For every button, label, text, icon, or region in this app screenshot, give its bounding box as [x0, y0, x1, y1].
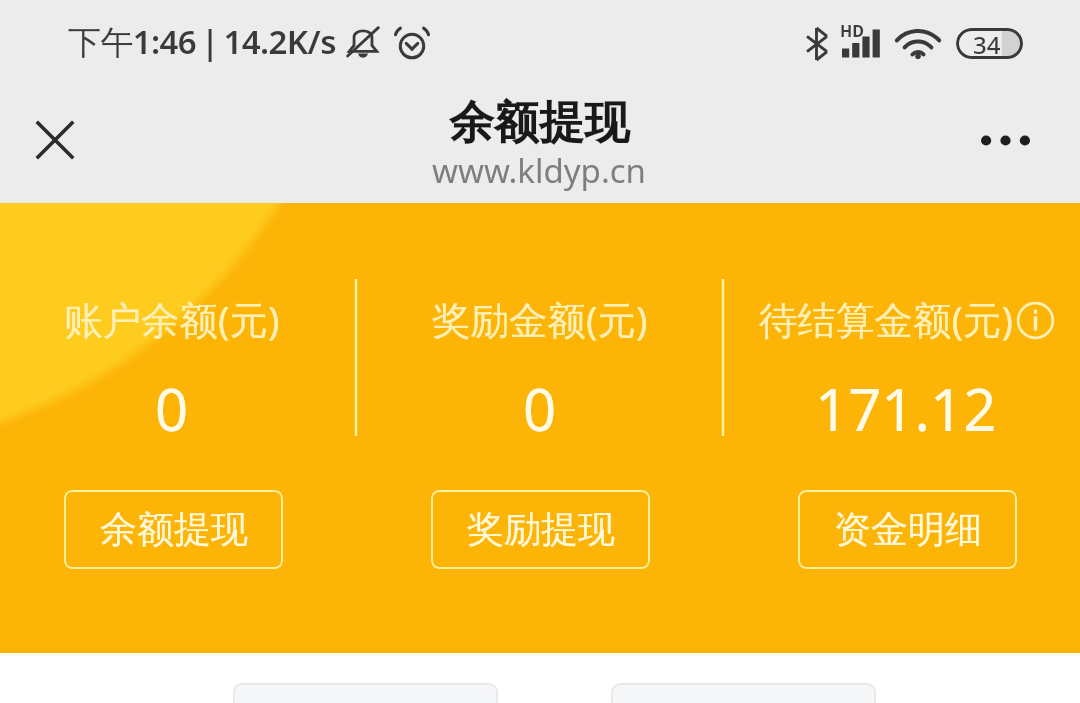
staticText: 34	[973, 28, 1001, 59]
staticText: 余额提现	[449, 95, 629, 152]
staticText: 奖励金额(元)	[432, 293, 648, 346]
staticText: 余额提现	[100, 506, 248, 553]
staticText: 待结算金额(元)	[759, 293, 1014, 346]
staticText: 资金明细	[834, 506, 982, 553]
button[interactable]: More options	[966, 97, 1044, 183]
staticText: www.kldyp.cn	[432, 148, 646, 193]
button[interactable]: 余额提现	[64, 490, 283, 569]
staticText: 下午1:46 | 14.2K/s	[68, 19, 336, 64]
staticText: 0	[155, 369, 189, 448]
button[interactable]: 奖励提现	[431, 490, 650, 569]
staticText: 账户余额(元)	[64, 293, 280, 346]
button[interactable]: Close	[16, 85, 94, 203]
button[interactable]	[233, 683, 498, 703]
staticText: 0	[523, 369, 557, 448]
button[interactable]: About pending settlement	[1017, 302, 1054, 339]
staticText: 奖励提现	[467, 506, 615, 553]
staticText: HD	[840, 20, 864, 42]
button[interactable]	[611, 683, 876, 703]
button[interactable]: 资金明细	[798, 490, 1017, 569]
staticText: 171.12	[815, 369, 997, 448]
